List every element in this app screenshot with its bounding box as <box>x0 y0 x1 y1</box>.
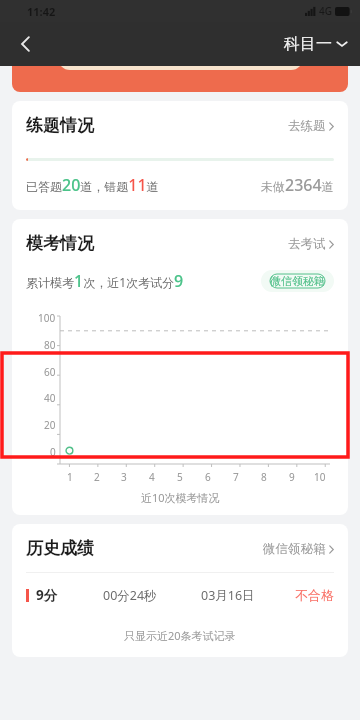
button[interactable] <box>12 66 348 92</box>
staticText: 9 <box>289 470 295 484</box>
staticText: 0 <box>50 445 56 459</box>
staticText: 4 <box>149 470 155 484</box>
staticText: 2 <box>94 470 100 484</box>
staticText: 80 <box>44 338 56 352</box>
staticText: 历史成绩 <box>26 538 94 559</box>
button[interactable]: 去考试 <box>288 234 334 254</box>
button[interactable]: 模考情况 <box>12 219 348 515</box>
button[interactable]: 去练题 <box>288 116 334 136</box>
staticText: 7 <box>233 470 239 484</box>
staticText: 100 <box>38 311 56 325</box>
staticText: 微信领秘籍 <box>270 274 325 288</box>
staticText: 20 <box>44 418 56 432</box>
staticText: 9分 <box>36 586 58 604</box>
staticText: 不合格 <box>295 587 334 603</box>
staticText: 去考试 <box>288 236 326 252</box>
staticText: 40 <box>44 391 56 405</box>
button[interactable]: 练题情况 <box>12 101 348 210</box>
staticText: 6 <box>205 470 211 484</box>
staticText: 练题情况 <box>26 115 94 136</box>
button[interactable]: 科目一 <box>284 34 348 54</box>
staticText: 60 <box>44 365 56 379</box>
staticText: 8 <box>261 470 267 484</box>
staticText: 只显示近20条考试记录 <box>124 628 236 643</box>
staticText: 10 <box>314 470 326 484</box>
staticText: 3 <box>121 470 127 484</box>
staticText: 1 <box>67 470 73 484</box>
staticText: 去练题 <box>288 118 326 134</box>
staticText: 近10次模考情况 <box>141 490 220 505</box>
staticText: 未做2364道 <box>261 174 334 196</box>
button[interactable]: Back <box>6 24 46 64</box>
staticText: 已答题20道，错题11道 <box>26 174 159 196</box>
staticText: 03月16日 <box>201 587 255 604</box>
staticText: 5 <box>177 470 183 484</box>
staticText: 00分24秒 <box>103 587 157 604</box>
button[interactable]: 微信领秘籍 <box>263 539 334 559</box>
button[interactable]: 9分 <box>12 586 348 604</box>
staticText: 11:42 <box>27 4 56 19</box>
staticText: 累计模考1次，近1次考试分9 <box>26 270 184 292</box>
staticText: 科目一 <box>284 34 332 54</box>
button[interactable]: 历史成绩 <box>12 524 348 657</box>
staticText: 微信领秘籍 <box>263 541 326 557</box>
button[interactable]: 微信领秘籍 <box>261 270 334 292</box>
staticText: 4G <box>319 4 332 18</box>
staticText: 模考情况 <box>26 233 94 254</box>
